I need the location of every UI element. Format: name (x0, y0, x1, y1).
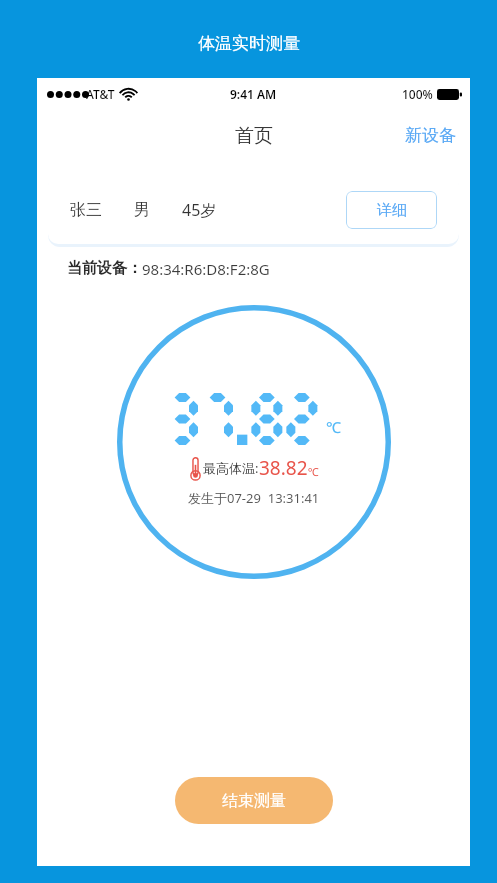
staticText: 45岁 (182, 199, 217, 221)
staticText: 38.82 (259, 455, 308, 481)
staticText: 100% (402, 86, 433, 102)
staticText: 当前设备： (67, 259, 142, 278)
button[interactable]: 结束测量 (175, 777, 333, 824)
staticText: 结束测量 (222, 791, 286, 811)
staticText: AT&T (86, 86, 115, 102)
staticText: 发生于07-29 13:31:41 (188, 489, 320, 507)
staticText: 首页 (235, 124, 273, 148)
staticText: ℃ (308, 464, 319, 479)
button[interactable]: 新设备 (391, 116, 470, 155)
staticText: ℃ (326, 417, 341, 437)
staticText: 新设备 (405, 125, 456, 146)
staticText: 9:41 AM (230, 86, 277, 102)
staticText: 最高体温: (203, 459, 259, 477)
staticText: 详细 (377, 201, 407, 220)
staticText: 张三 (70, 200, 102, 220)
staticText: 体温实时测量 (198, 33, 300, 54)
button[interactable]: 张三 (48, 175, 459, 244)
staticText: 男 (134, 200, 150, 220)
staticText: 98:34:R6:D8:F2:8G (142, 259, 270, 279)
button[interactable]: 详细 (346, 191, 437, 229)
